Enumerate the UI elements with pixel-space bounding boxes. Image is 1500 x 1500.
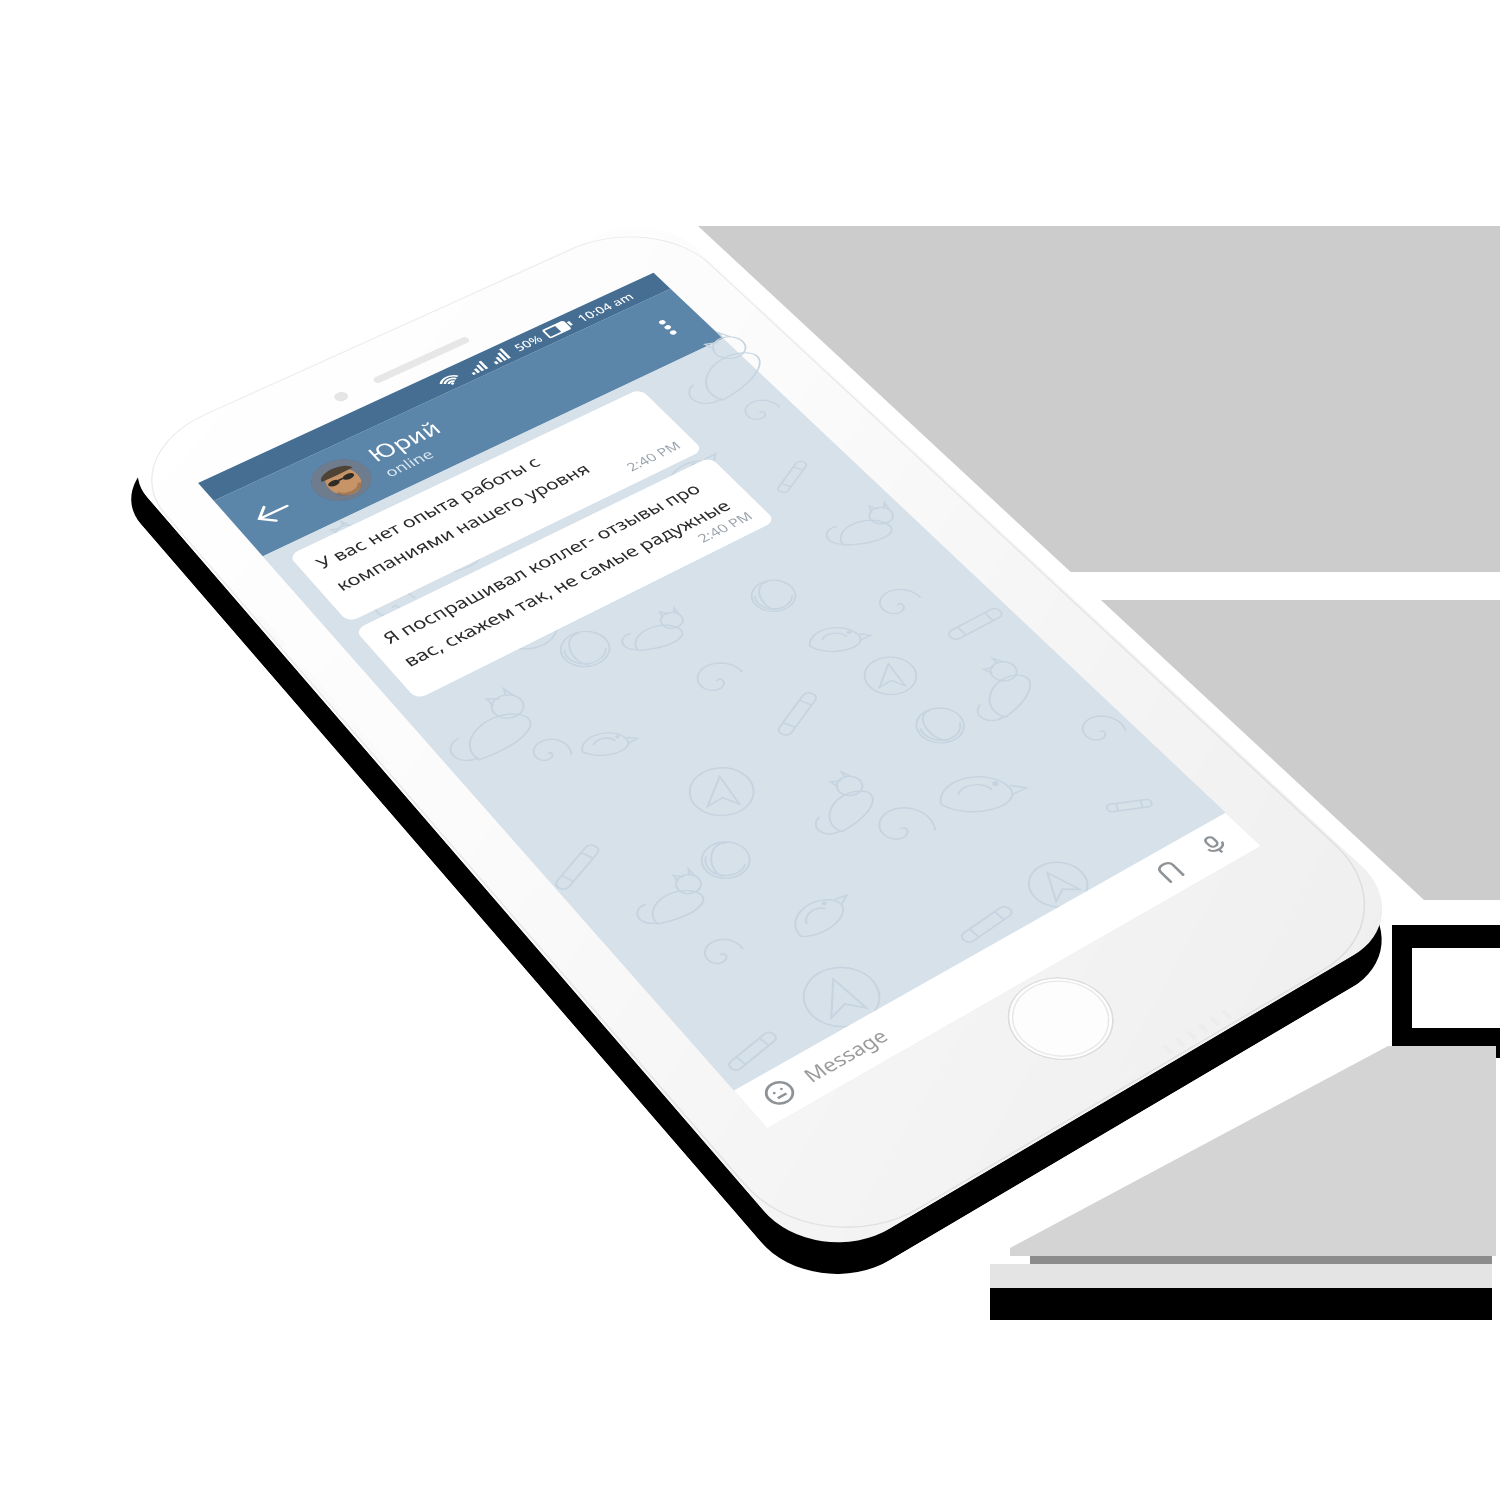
staticText: 10:04 am [573, 290, 638, 325]
button[interactable]: У вас нет опыта работы с компаниями наше… [288, 388, 704, 623]
button[interactable]: Я поспрашивал коллег- отзывы про вас, ск… [354, 457, 776, 700]
staticText: Я поспрашивал коллег- отзывы про вас, ск… [377, 474, 736, 671]
staticText: online [380, 446, 438, 481]
button[interactable]: Emoji [758, 1076, 801, 1110]
staticText: 2:40 PM [693, 508, 756, 546]
staticText: Юрий [361, 415, 447, 467]
button[interactable]: Voice message [1196, 831, 1234, 860]
button[interactable]: More options [636, 306, 698, 349]
staticText: У вас нет опыта работы с компаниями наше… [310, 438, 595, 595]
staticText: Message [797, 1023, 894, 1088]
button[interactable]: Attach [1150, 857, 1189, 886]
button[interactable]: Back [214, 469, 331, 556]
staticText: 50% [510, 332, 546, 354]
staticText: 2:40 PM [622, 438, 685, 474]
